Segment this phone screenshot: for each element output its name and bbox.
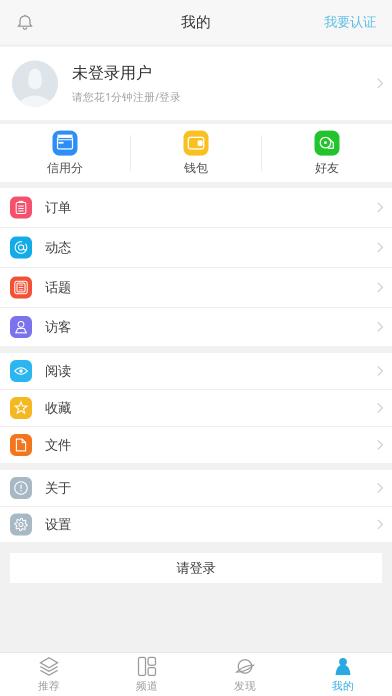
staticText: 阅读	[45, 363, 71, 379]
button[interactable]: 我要认证	[312, 0, 388, 44]
staticText: 钱包	[184, 161, 208, 175]
button[interactable]: Notifications	[4, 0, 46, 44]
staticText: 访客	[45, 319, 71, 335]
staticText: 话题	[45, 279, 71, 296]
staticText: 动态	[45, 239, 71, 256]
staticText: 我的	[332, 679, 354, 692]
button[interactable]: 好友	[262, 124, 392, 182]
button[interactable]: 文件	[0, 427, 392, 463]
button[interactable]: 信用分	[0, 124, 130, 182]
staticText: 收藏	[45, 400, 71, 416]
button[interactable]: 我的	[294, 653, 392, 696]
button[interactable]: 关于	[0, 470, 392, 506]
button[interactable]: 收藏	[0, 390, 392, 426]
staticText: 好友	[315, 161, 339, 175]
staticText: 文件	[45, 437, 71, 453]
button[interactable]: 订单	[0, 188, 392, 227]
staticText: 请您花1分钟注册/登录	[72, 90, 181, 104]
staticText: 订单	[45, 199, 71, 216]
staticText: 设置	[45, 516, 71, 533]
staticText: 频道	[136, 679, 158, 692]
staticText: 我的	[181, 13, 211, 31]
button[interactable]: 请登录	[10, 553, 382, 583]
button[interactable]: 阅读	[0, 353, 392, 389]
button[interactable]: 频道	[98, 653, 196, 696]
staticText: 关于	[45, 480, 71, 496]
staticText: 发现	[234, 679, 256, 692]
staticText: 信用分	[47, 161, 83, 175]
staticText: 请登录	[176, 560, 215, 576]
staticText: 我要认证	[324, 14, 376, 30]
button[interactable]: 设置	[0, 507, 392, 542]
button[interactable]: 发现	[196, 653, 294, 696]
staticText: 推荐	[38, 679, 60, 692]
button[interactable]: 动态	[0, 228, 392, 267]
button[interactable]: 访客	[0, 308, 392, 346]
button[interactable]: 推荐	[0, 653, 98, 696]
button[interactable]: 未登录用户	[0, 47, 392, 120]
button[interactable]: 钱包	[131, 124, 261, 182]
button[interactable]: 话题	[0, 268, 392, 307]
staticText: 未登录用户	[72, 63, 152, 83]
